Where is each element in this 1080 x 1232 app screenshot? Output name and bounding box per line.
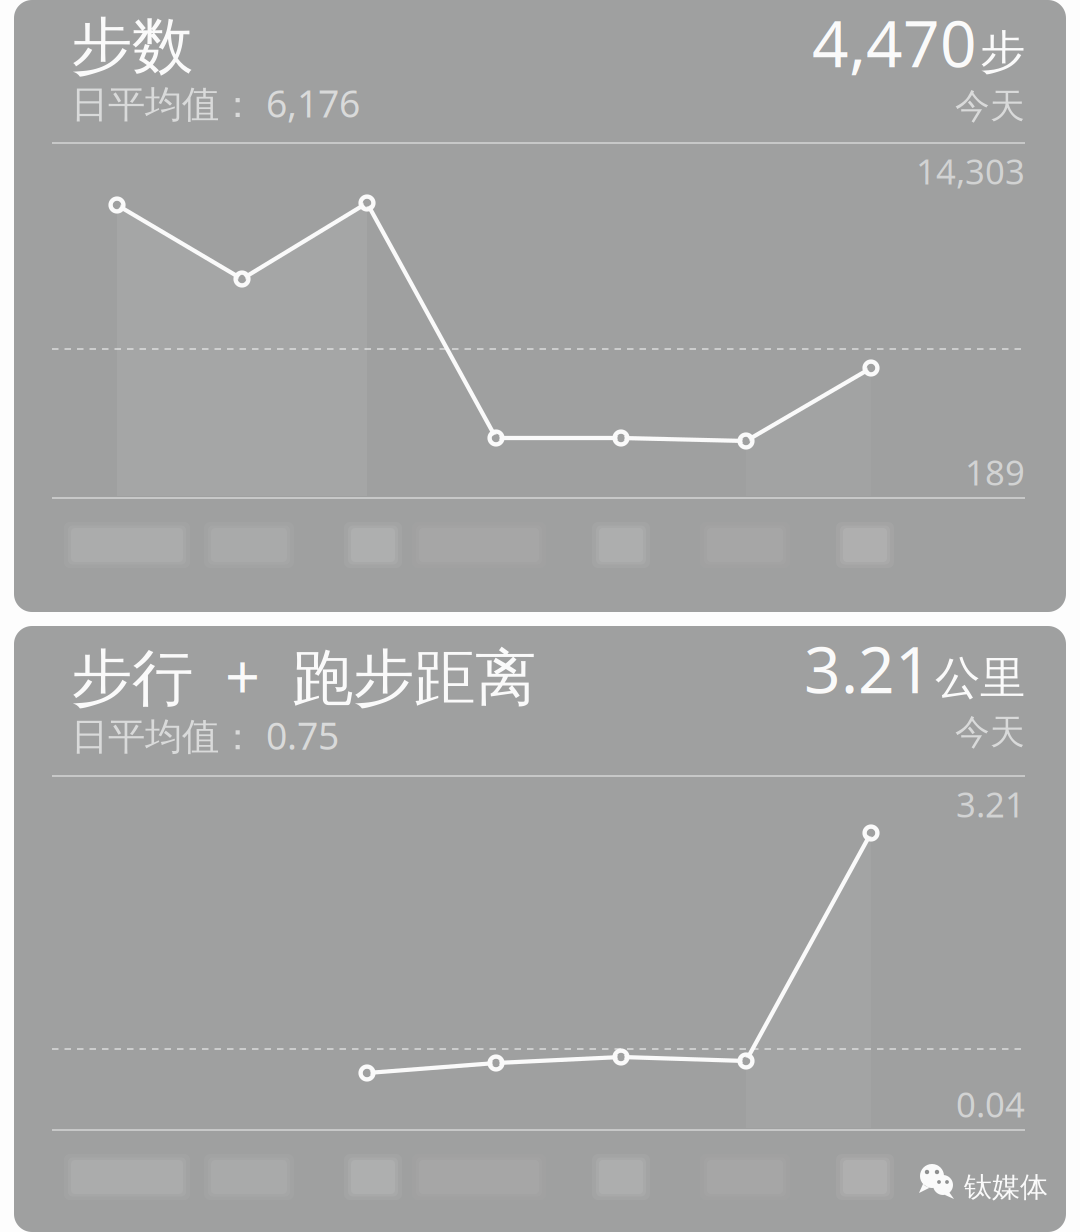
staticText: 公里 [935,650,1025,706]
staticText: 0.04 [956,1081,1025,1127]
staticText: 3.21 [956,781,1025,827]
staticText: 步数 [71,9,193,84]
button[interactable]: 步行 + 跑步距离 [14,626,1066,1232]
staticText: 日平均值： 6,176 [71,78,360,128]
staticText: 14,303 [916,148,1025,194]
button[interactable]: 步数 [14,0,1066,612]
staticText: 3.21 [804,626,932,711]
staticText: 步 [980,24,1025,80]
staticText: 4,470 [812,0,977,85]
staticText: 步行 + 跑步距离 [71,635,536,716]
staticText: 钛媒体 [964,1170,1048,1204]
staticText: 日平均值： 0.75 [71,710,339,760]
staticText: 今天 [955,711,1025,754]
staticText: 189 [965,449,1025,495]
staticText: 今天 [955,85,1025,128]
